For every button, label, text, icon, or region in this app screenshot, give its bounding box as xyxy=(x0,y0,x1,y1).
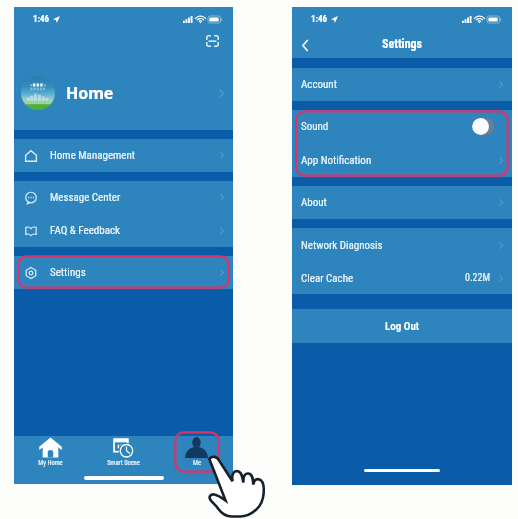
staticText: Home Management xyxy=(50,149,136,162)
button[interactable]: App Notification xyxy=(292,143,512,177)
button[interactable]: About xyxy=(292,186,512,219)
staticText: Settings xyxy=(50,266,86,279)
button[interactable]: Network Diagnosis xyxy=(292,228,512,262)
button[interactable]: Me xyxy=(160,436,233,484)
button[interactable]: Home xyxy=(14,65,233,121)
button[interactable]: Sound toggle xyxy=(472,118,494,135)
staticText: About xyxy=(301,196,327,209)
staticText: 1:46 xyxy=(311,14,328,25)
staticText: Smart Scene xyxy=(107,459,140,467)
staticText: 1:46 xyxy=(33,14,50,25)
button[interactable]: Home Management xyxy=(14,139,233,172)
button[interactable]: FAQ & Feedback xyxy=(14,214,233,247)
button[interactable]: My Home xyxy=(14,436,87,484)
staticText: Clear Cache xyxy=(301,272,354,285)
staticText: Me xyxy=(193,459,201,467)
button[interactable]: Smart Scene xyxy=(87,436,160,484)
staticText: 0.22M xyxy=(465,272,490,284)
staticText: Settings xyxy=(382,37,423,51)
staticText: App Notification xyxy=(301,154,372,167)
button[interactable]: Log Out xyxy=(292,309,512,343)
button[interactable]: Sound xyxy=(292,110,512,143)
button[interactable]: Back xyxy=(294,33,316,57)
staticText: FAQ & Feedback xyxy=(50,224,120,237)
staticText: Message Center xyxy=(50,191,121,204)
button[interactable]: Clear Cache xyxy=(292,262,512,294)
staticText: My Home xyxy=(38,459,63,467)
staticText: Home xyxy=(66,82,114,104)
button[interactable]: Scan QR code xyxy=(200,29,224,53)
staticText: Account xyxy=(301,78,337,91)
button[interactable]: Account xyxy=(292,68,512,101)
button[interactable]: Message Center xyxy=(14,181,233,214)
staticText: Sound xyxy=(301,120,329,133)
staticText: Log Out xyxy=(385,320,420,333)
staticText: Network Diagnosis xyxy=(301,239,383,252)
button[interactable]: Settings xyxy=(14,256,233,289)
